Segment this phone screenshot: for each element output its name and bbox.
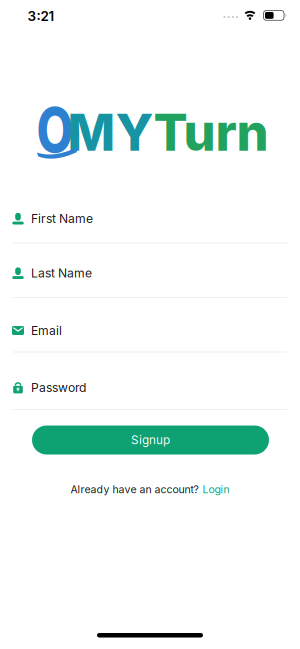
button[interactable]: Password (0, 379, 300, 395)
staticText: Turn (153, 102, 268, 163)
staticText: Signup (131, 433, 170, 447)
staticText: O (31, 92, 79, 167)
staticText: Last Name (31, 266, 92, 280)
button[interactable]: Email (0, 322, 300, 338)
staticText: MY (67, 102, 153, 163)
button[interactable]: Login (202, 483, 229, 496)
staticText: 3:21 (27, 8, 54, 24)
staticText: First Name (31, 211, 93, 226)
button[interactable]: Last Name (0, 265, 300, 281)
staticText: Already have an account? (70, 483, 198, 496)
button[interactable]: Signup (32, 425, 269, 454)
button[interactable]: First Name (0, 210, 300, 226)
staticText: Email (31, 323, 62, 338)
staticText: Login (202, 483, 229, 496)
staticText: Password (31, 380, 86, 395)
